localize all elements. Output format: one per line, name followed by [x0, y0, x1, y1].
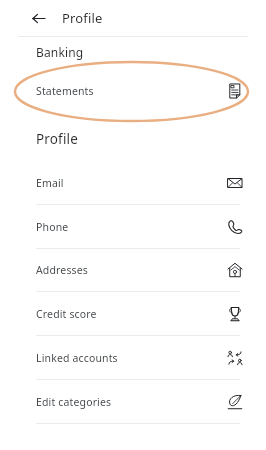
staticText: Linked accounts [36, 351, 227, 365]
other: Email [227, 175, 243, 191]
button[interactable]: Addresses [0, 249, 266, 291]
other: Statements [227, 83, 243, 99]
button[interactable]: Credit score [0, 292, 266, 335]
other: Phone [227, 219, 243, 235]
staticText: Statements [36, 84, 227, 98]
button[interactable]: Email [0, 161, 266, 204]
button[interactable]: Phone [0, 205, 266, 248]
staticText: Email [36, 176, 227, 190]
button[interactable]: Back [27, 7, 49, 29]
staticText: Profile [62, 9, 103, 27]
staticText: Edit categories [36, 395, 227, 409]
staticText: Phone [36, 220, 227, 234]
other: Credit score [227, 306, 243, 322]
other: Addresses [227, 262, 243, 278]
staticText: Profile [36, 130, 78, 148]
staticText: Credit score [36, 307, 227, 321]
button[interactable]: Linked accounts [0, 336, 266, 379]
button[interactable]: Statements [0, 71, 266, 111]
staticText: Addresses [36, 263, 227, 277]
staticText: Banking [36, 44, 84, 60]
button[interactable]: Edit categories [0, 380, 266, 423]
other: Linked accounts [227, 350, 243, 366]
other: Edit categories [227, 394, 243, 410]
